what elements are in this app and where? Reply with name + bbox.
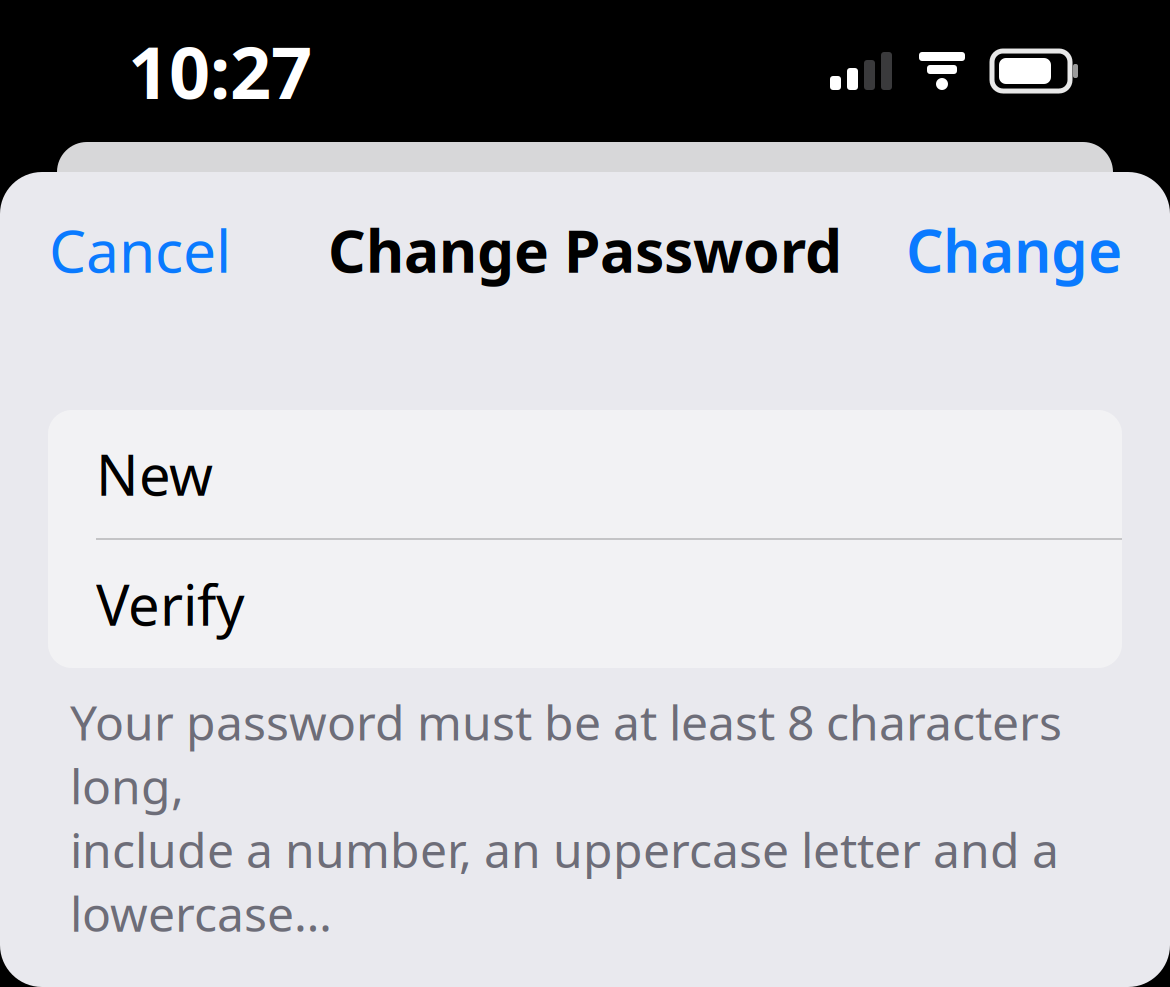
staticText: Change	[906, 211, 1122, 289]
staticText: Change Password	[328, 211, 842, 289]
staticText: 10:27	[128, 23, 312, 119]
button[interactable]: Verify	[48, 540, 1122, 668]
staticText: New	[96, 437, 213, 511]
button[interactable]: Cancel	[39, 197, 241, 303]
staticText: Verify	[96, 567, 245, 641]
button[interactable]: Change	[896, 197, 1132, 303]
staticText: Cancel	[49, 211, 231, 289]
staticText: Your password must be at least 8 charact…	[70, 690, 1062, 945]
button[interactable]: New	[48, 410, 1122, 538]
